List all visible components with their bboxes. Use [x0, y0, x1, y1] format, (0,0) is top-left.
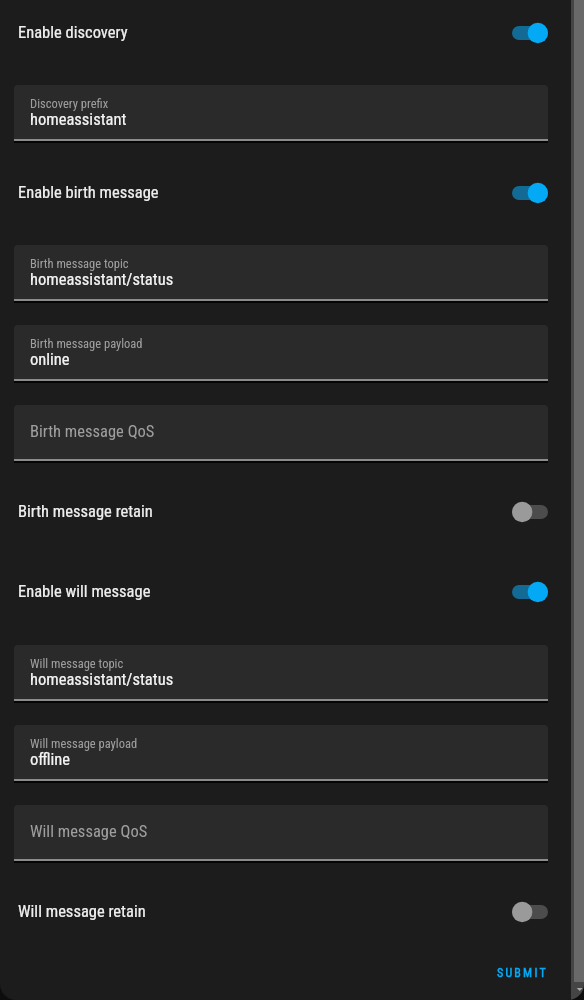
button[interactable]: Will message retain: [0, 889, 584, 933]
staticText: offline: [30, 750, 71, 769]
button[interactable]: Enable birth message: [0, 170, 584, 214]
button[interactable]: Enable discovery: [0, 10, 584, 54]
button[interactable]: Will message payload: [14, 725, 548, 780]
staticText: Birth message retain: [18, 502, 153, 521]
button[interactable]: Will message QoS: [14, 805, 548, 860]
staticText: Will message retain: [18, 902, 146, 921]
staticText: Will message topic: [30, 656, 124, 671]
button[interactable]: Birth message payload: [14, 325, 548, 380]
staticText: homeassistant: [30, 110, 127, 129]
staticText: homeassistant/status: [30, 270, 174, 289]
button[interactable]: Enable will message: [0, 569, 584, 613]
button[interactable]: Discovery prefix: [14, 85, 548, 140]
staticText: Enable birth message: [18, 183, 159, 202]
button[interactable]: Birth message retain: [0, 489, 584, 533]
button[interactable]: Scroll: [571, 0, 584, 1000]
staticText: online: [30, 350, 70, 369]
button[interactable]: Will message topic: [14, 645, 548, 700]
button[interactable]: Birth message topic: [14, 245, 548, 300]
staticText: homeassistant/status: [30, 670, 174, 689]
staticText: SUBMIT: [497, 966, 548, 980]
staticText: Birth message QoS: [30, 422, 155, 441]
button[interactable]: Birth message QoS: [14, 405, 548, 460]
staticText: Discovery prefix: [30, 96, 109, 111]
staticText: Birth message topic: [30, 256, 129, 271]
staticText: Will message QoS: [30, 822, 148, 841]
staticText: Will message payload: [30, 736, 138, 751]
button[interactable]: SUBMIT: [481, 958, 564, 988]
staticText: Birth message payload: [30, 336, 143, 351]
staticText: Enable discovery: [18, 23, 128, 42]
staticText: Enable will message: [18, 582, 151, 601]
